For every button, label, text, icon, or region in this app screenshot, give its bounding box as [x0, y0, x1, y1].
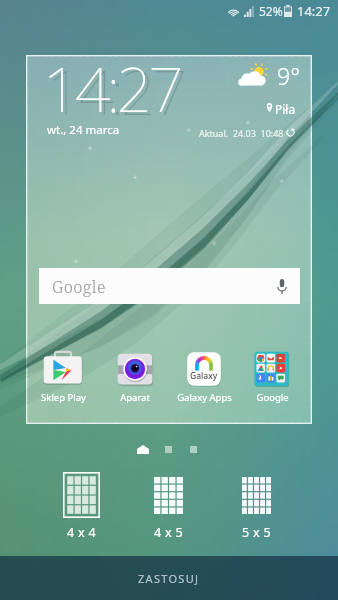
staticText: Aparat	[120, 391, 150, 404]
staticText: 14:27	[47, 49, 185, 133]
staticText: 52%	[259, 3, 283, 19]
staticText: wt., 24 marca	[47, 122, 120, 138]
staticText: ZASTOSUJ	[138, 571, 200, 586]
staticText: Google	[256, 391, 289, 404]
staticText: Piła	[275, 101, 296, 117]
button[interactable]: 4 x 4	[46, 468, 116, 541]
button[interactable]: Aparat	[107, 349, 163, 404]
staticText: 14:27	[43, 46, 181, 130]
staticText: 4 x 5	[154, 524, 183, 541]
staticText: 9°	[277, 60, 300, 91]
button[interactable]: Voice search	[275, 277, 289, 295]
button[interactable]: Google	[39, 268, 300, 304]
button[interactable]: Galaxy	[176, 349, 232, 404]
staticText: Sklep Play	[41, 391, 86, 404]
staticText: Galaxy	[190, 370, 218, 382]
button[interactable]: Page 3	[184, 441, 202, 457]
button[interactable]: Home screen page	[134, 441, 152, 457]
staticText: Aktual. 24.03 10:48	[199, 127, 284, 139]
staticText: 4 x 4	[67, 524, 96, 541]
staticText: 14:27	[297, 2, 331, 20]
button[interactable]: 4 x 5	[133, 468, 203, 541]
button[interactable]: Refresh weather	[284, 126, 296, 138]
button[interactable]: 5 x 5	[221, 468, 291, 541]
button[interactable]: Page 2	[159, 441, 177, 457]
staticText: Google	[52, 275, 106, 297]
button[interactable]: Sklep Play	[35, 349, 91, 404]
staticText: Galaxy Apps	[177, 391, 232, 404]
button[interactable]: Google	[244, 349, 300, 404]
staticText: 5 x 5	[242, 524, 271, 541]
button[interactable]: ZASTOSUJ	[0, 556, 338, 600]
